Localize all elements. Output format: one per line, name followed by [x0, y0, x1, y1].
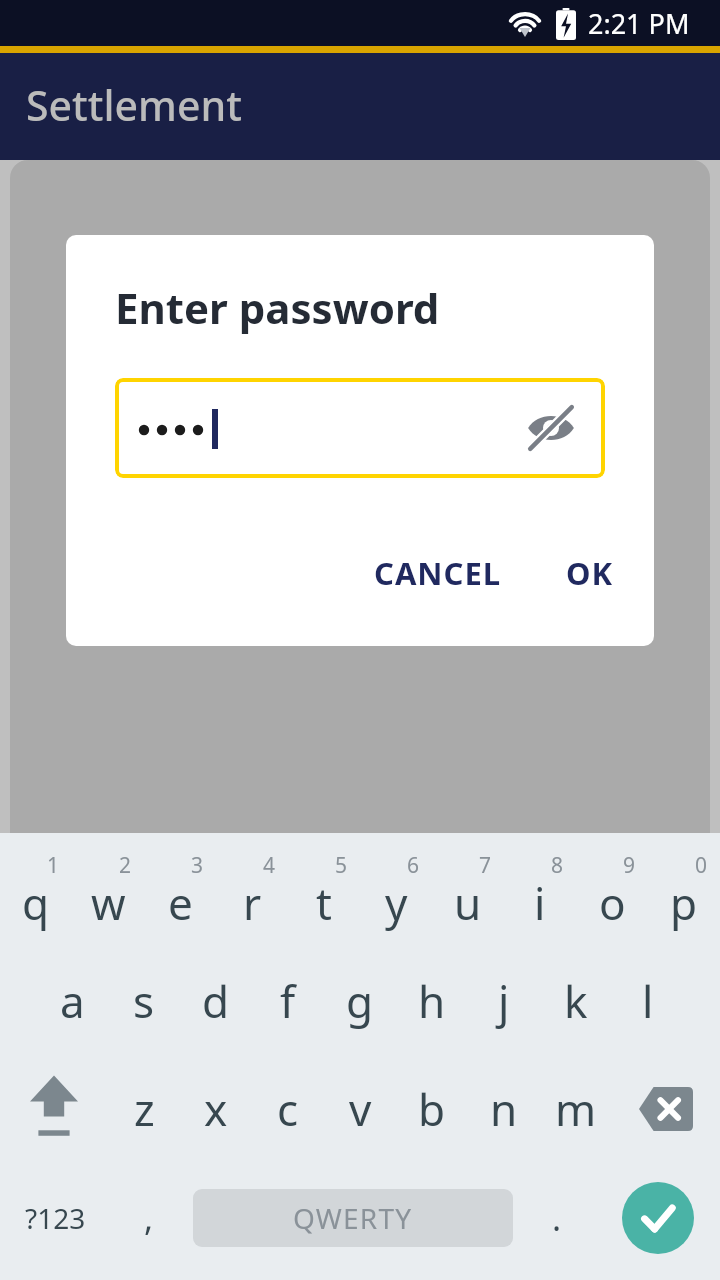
button[interactable]: h	[396, 947, 468, 1055]
staticText: w	[91, 873, 126, 933]
button[interactable]: d	[180, 947, 252, 1055]
staticText: p	[670, 873, 698, 933]
staticText: 7	[479, 851, 492, 880]
staticText: .	[552, 1195, 562, 1241]
button[interactable]: 8	[504, 839, 576, 947]
staticText: i	[534, 873, 546, 933]
staticText: 9	[623, 851, 636, 880]
button[interactable]: QWERTY	[193, 1189, 513, 1247]
staticText: a	[60, 971, 85, 1031]
button[interactable]: .	[519, 1163, 595, 1272]
staticText: QWERTY	[293, 1199, 413, 1237]
staticText: e	[168, 873, 193, 933]
staticText: ?123	[25, 1199, 86, 1237]
button[interactable]: CANCEL	[356, 538, 520, 608]
staticText: g	[346, 971, 374, 1031]
button[interactable]: n	[468, 1055, 540, 1163]
staticText: x	[204, 1079, 228, 1139]
button[interactable]: 2	[72, 839, 144, 947]
staticText: c	[277, 1079, 299, 1139]
button[interactable]: c	[252, 1055, 324, 1163]
staticText: h	[418, 971, 446, 1031]
staticText: z	[134, 1079, 155, 1139]
button[interactable]: v	[324, 1055, 396, 1163]
button[interactable]: 4	[216, 839, 288, 947]
staticText: j	[498, 971, 510, 1031]
staticText: s	[133, 971, 155, 1031]
button[interactable]: m	[540, 1055, 612, 1163]
staticText: 3	[191, 851, 204, 880]
staticText: 4	[263, 851, 276, 880]
button[interactable]: 6	[360, 839, 432, 947]
staticText: 1	[47, 851, 60, 880]
staticText: CANCEL	[374, 552, 502, 594]
button[interactable]: Hide password	[115, 378, 605, 478]
button[interactable]: g	[324, 947, 396, 1055]
button[interactable]: z	[108, 1055, 180, 1163]
button[interactable]: b	[396, 1055, 468, 1163]
button[interactable]: ,	[111, 1163, 187, 1272]
button[interactable]: x	[180, 1055, 252, 1163]
staticText: 8	[551, 851, 564, 880]
staticText: Settlement	[26, 77, 242, 133]
staticText: q	[22, 873, 50, 933]
button[interactable]: 1	[0, 839, 72, 947]
button[interactable]: Shift	[0, 1055, 108, 1163]
staticText: 2	[119, 851, 132, 880]
staticText: 6	[407, 851, 420, 880]
button[interactable]: f	[252, 947, 324, 1055]
staticText: v	[349, 1079, 372, 1139]
button[interactable]: 5	[288, 839, 360, 947]
staticText: o	[599, 873, 626, 933]
staticText: ,	[144, 1195, 154, 1241]
staticText: m	[555, 1079, 597, 1139]
button[interactable]: OK	[548, 538, 632, 608]
staticText: 5	[335, 851, 348, 880]
button[interactable]: 7	[432, 839, 504, 947]
staticText: k	[564, 971, 588, 1031]
staticText: b	[418, 1079, 446, 1139]
button[interactable]: ?123	[0, 1163, 111, 1272]
staticText: n	[490, 1079, 518, 1139]
staticText: Enter password	[115, 279, 440, 336]
button[interactable]: k	[540, 947, 612, 1055]
button[interactable]: 9	[576, 839, 648, 947]
staticText: r	[243, 873, 262, 933]
staticText: l	[642, 971, 654, 1031]
staticText: OK	[566, 552, 614, 594]
button[interactable]: Backspace	[612, 1055, 720, 1163]
button[interactable]: s	[108, 947, 180, 1055]
button[interactable]: l	[612, 947, 684, 1055]
button[interactable]: Hide password	[523, 400, 579, 456]
staticText: u	[454, 873, 482, 933]
staticText: 2:21 PM	[588, 5, 690, 42]
button[interactable]: Enter	[595, 1163, 720, 1272]
staticText: t	[316, 873, 332, 933]
staticText: 0	[695, 851, 708, 880]
button[interactable]: 3	[144, 839, 216, 947]
button[interactable]: j	[468, 947, 540, 1055]
staticText: y	[385, 873, 408, 933]
button[interactable]: a	[36, 947, 108, 1055]
button[interactable]: 0	[648, 839, 720, 947]
staticText: f	[280, 971, 296, 1031]
staticText: d	[202, 971, 230, 1031]
